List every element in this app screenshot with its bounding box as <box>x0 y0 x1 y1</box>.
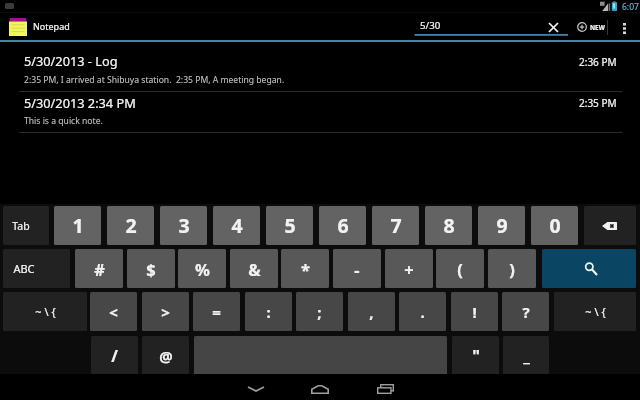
button[interactable]: ) <box>488 249 536 288</box>
button[interactable]: 5/30 <box>412 13 568 41</box>
staticText: / <box>111 345 118 367</box>
button[interactable]: # <box>75 249 123 288</box>
button[interactable]: : <box>245 292 292 331</box>
staticText: 2:35 PM <box>579 96 617 110</box>
staticText: ( <box>457 258 463 280</box>
staticText: " <box>472 345 480 367</box>
staticText: 5/30 <box>420 19 441 32</box>
staticText: ~ \ { <box>35 304 56 319</box>
button[interactable]: Notepad <box>0 13 78 41</box>
button[interactable]: ( <box>436 249 484 288</box>
button[interactable]: / <box>91 336 138 375</box>
staticText: 2 <box>125 212 137 239</box>
button[interactable]: _ <box>503 336 549 375</box>
staticText: Notepad <box>33 20 70 32</box>
staticText: 5/30/2013 - Log <box>24 52 118 69</box>
button[interactable]: Hide keyboard <box>234 374 278 400</box>
staticText: : <box>266 302 271 322</box>
button[interactable]: * <box>281 249 329 288</box>
button[interactable]: 8 <box>425 206 472 245</box>
staticText: 0 <box>549 212 561 239</box>
button[interactable]: = <box>193 292 240 331</box>
staticText: @ <box>159 346 173 366</box>
staticText: > <box>161 302 170 322</box>
staticText: ? <box>522 302 530 322</box>
button[interactable] <box>194 336 447 375</box>
staticText: , <box>369 302 374 322</box>
staticText: 4 <box>231 212 243 239</box>
button[interactable]: % <box>178 249 226 288</box>
button[interactable]: 2 <box>107 206 154 245</box>
staticText: 2:36 PM <box>579 55 617 69</box>
button[interactable]: 5/30/2013 2:34 PM <box>0 92 640 133</box>
staticText: ABC <box>13 261 35 276</box>
staticText: ! <box>472 302 477 322</box>
button[interactable]: $ <box>127 249 175 288</box>
staticText: This is a quick note. <box>24 115 103 127</box>
staticText: $ <box>146 258 156 280</box>
staticText: NEW <box>590 23 605 32</box>
button[interactable]: Clear search <box>543 13 564 41</box>
button[interactable]: 0 <box>531 206 578 245</box>
button[interactable]: ? <box>502 292 549 331</box>
button[interactable]: Backspace <box>584 206 636 245</box>
button[interactable]: ~ \ { <box>554 292 636 331</box>
button[interactable]: ; <box>296 292 343 331</box>
staticText: ) <box>509 258 515 280</box>
staticText: 6:07 <box>622 1 639 13</box>
button[interactable]: 5/30/2013 - Log <box>0 41 640 91</box>
staticText: = <box>212 302 221 322</box>
staticText: - <box>354 258 360 280</box>
staticText: & <box>248 258 261 280</box>
staticText: 5 <box>284 212 296 239</box>
button[interactable]: 4 <box>213 206 260 245</box>
staticText: 5/30/2013 2:34 PM <box>24 94 136 111</box>
button[interactable]: ~ \ { <box>3 292 87 331</box>
staticText: 3 <box>178 212 190 239</box>
staticText: 9 <box>496 212 508 239</box>
button[interactable]: < <box>90 292 137 331</box>
button[interactable]: , <box>348 292 395 331</box>
button[interactable]: Tab <box>3 206 49 245</box>
button[interactable]: " <box>452 336 499 375</box>
button[interactable]: 6 <box>319 206 366 245</box>
staticText: 2:35 PM, I arrived at Shibuya station. 2… <box>24 74 285 86</box>
staticText: % <box>195 258 210 280</box>
button[interactable]: - <box>333 249 381 288</box>
staticText: 6 <box>337 212 349 239</box>
staticText: 8 <box>443 212 455 239</box>
staticText: < <box>109 302 118 322</box>
staticText: . <box>420 302 425 322</box>
button[interactable]: 5 <box>266 206 313 245</box>
staticText: 7 <box>390 212 402 239</box>
button[interactable]: Home <box>298 374 342 400</box>
staticText: _ <box>523 345 530 367</box>
button[interactable]: 7 <box>372 206 419 245</box>
button[interactable]: @ <box>142 336 189 375</box>
button[interactable]: > <box>142 292 189 331</box>
button[interactable]: NEW <box>573 13 609 41</box>
button[interactable]: ! <box>451 292 498 331</box>
button[interactable]: & <box>230 249 278 288</box>
staticText: 1 <box>72 212 84 239</box>
button[interactable]: + <box>385 249 433 288</box>
button[interactable]: More options <box>612 13 636 41</box>
staticText: * <box>301 258 310 280</box>
button[interactable]: Recent apps <box>363 374 407 400</box>
button[interactable]: 3 <box>160 206 207 245</box>
staticText: Tab <box>12 219 30 233</box>
staticText: + <box>404 258 414 280</box>
button[interactable]: ABC <box>3 249 70 288</box>
button[interactable]: 1 <box>54 206 101 245</box>
staticText: # <box>94 258 105 280</box>
staticText: ~ \ { <box>585 304 606 319</box>
button[interactable]: Search <box>542 249 636 288</box>
staticText: ; <box>317 302 322 322</box>
button[interactable]: . <box>399 292 446 331</box>
button[interactable]: 9 <box>478 206 525 245</box>
